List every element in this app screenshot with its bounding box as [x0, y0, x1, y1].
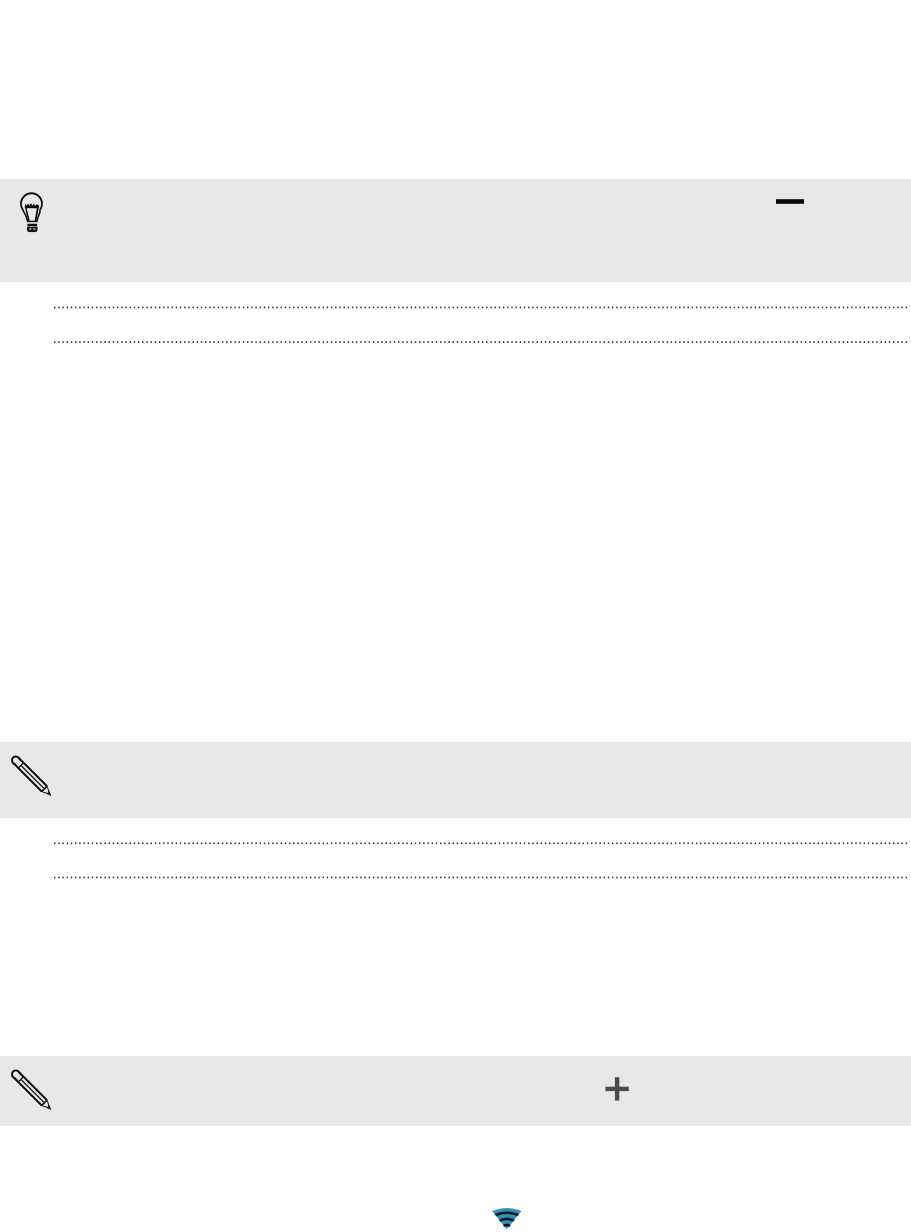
- button[interactable]: Add: [605, 1077, 629, 1101]
- button[interactable]: Collapse: [776, 199, 804, 204]
